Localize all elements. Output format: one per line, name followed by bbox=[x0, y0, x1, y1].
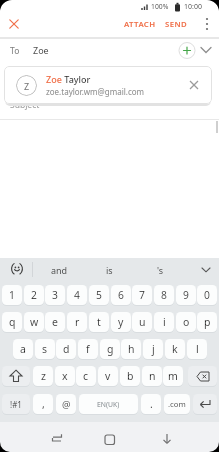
staticText: To bbox=[10, 45, 20, 57]
button[interactable]: 5 bbox=[89, 285, 109, 305]
button[interactable]: p bbox=[197, 312, 217, 332]
button[interactable]: m bbox=[163, 366, 183, 386]
staticText: 2 bbox=[31, 288, 37, 302]
button[interactable]: 's bbox=[137, 258, 183, 281]
button[interactable]: is bbox=[86, 258, 132, 281]
staticText: s bbox=[42, 342, 48, 356]
button[interactable] bbox=[4, 17, 22, 31]
button[interactable]: h bbox=[121, 339, 141, 359]
button[interactable]: k bbox=[165, 339, 185, 359]
button[interactable]: . bbox=[141, 394, 161, 414]
button[interactable]: 1 bbox=[2, 285, 22, 305]
staticText: , bbox=[42, 397, 45, 411]
button[interactable]: d bbox=[56, 339, 76, 359]
button[interactable]: .com bbox=[164, 394, 190, 414]
button[interactable]: 3 bbox=[45, 285, 65, 305]
staticText: !#1 bbox=[10, 399, 22, 410]
button[interactable]: x bbox=[55, 366, 75, 386]
button[interactable]: t bbox=[89, 312, 109, 332]
button[interactable]: 9 bbox=[176, 285, 196, 305]
button[interactable]: i bbox=[154, 312, 174, 332]
button[interactable] bbox=[152, 428, 182, 450]
staticText: t bbox=[97, 315, 101, 329]
staticText: is bbox=[106, 264, 113, 276]
staticText: 9 bbox=[183, 288, 189, 302]
staticText: a bbox=[20, 342, 26, 356]
button[interactable]: s bbox=[35, 339, 55, 359]
button[interactable]: ATTACH bbox=[120, 14, 160, 34]
staticText: @ bbox=[62, 398, 71, 411]
staticText: z bbox=[41, 369, 46, 383]
button[interactable]: b bbox=[120, 366, 140, 386]
staticText: w bbox=[30, 315, 39, 329]
staticText: 3 bbox=[52, 288, 58, 302]
staticText: ATTACH bbox=[124, 19, 156, 30]
staticText: 10:00 bbox=[184, 2, 202, 12]
staticText: p bbox=[204, 315, 211, 329]
staticText: Zoe bbox=[46, 73, 62, 85]
staticText: Subject bbox=[10, 99, 40, 111]
staticText: b bbox=[127, 369, 134, 383]
button[interactable] bbox=[4, 260, 30, 279]
button[interactable] bbox=[95, 428, 125, 450]
staticText: and bbox=[51, 264, 68, 276]
button[interactable]: y bbox=[111, 312, 131, 332]
staticText: 4 bbox=[74, 288, 80, 302]
button[interactable]: n bbox=[142, 366, 162, 386]
button[interactable]: u bbox=[132, 312, 152, 332]
staticText: 1 bbox=[9, 288, 15, 302]
button[interactable]: q bbox=[2, 312, 22, 332]
staticText: 7 bbox=[139, 288, 145, 302]
button[interactable]: 6 bbox=[111, 285, 131, 305]
button[interactable]: l bbox=[187, 339, 207, 359]
button[interactable]: 7 bbox=[132, 285, 152, 305]
button[interactable]: 2 bbox=[24, 285, 44, 305]
staticText: x bbox=[62, 369, 68, 383]
button[interactable]: , bbox=[33, 394, 53, 414]
button[interactable] bbox=[193, 394, 217, 414]
button[interactable]: v bbox=[98, 366, 118, 386]
button[interactable]: r bbox=[67, 312, 87, 332]
button[interactable]: SEND bbox=[160, 14, 193, 34]
button[interactable]: and bbox=[36, 258, 82, 281]
button[interactable] bbox=[2, 366, 30, 386]
staticText: 100% bbox=[151, 2, 169, 11]
button[interactable]: 8 bbox=[154, 285, 174, 305]
staticText: .com bbox=[168, 399, 186, 410]
button[interactable]: z bbox=[33, 366, 53, 386]
staticText: . bbox=[150, 397, 153, 411]
button[interactable] bbox=[42, 428, 72, 450]
staticText: Zoe bbox=[33, 44, 49, 56]
button[interactable]: w bbox=[24, 312, 44, 332]
button[interactable] bbox=[188, 366, 217, 386]
staticText: SEND bbox=[165, 19, 188, 30]
staticText: zoe.taylor.wm@gmail.com bbox=[46, 86, 145, 97]
staticText: v bbox=[105, 369, 111, 383]
button[interactable] bbox=[198, 14, 216, 34]
button[interactable]: a bbox=[13, 339, 33, 359]
button[interactable]: f bbox=[78, 339, 98, 359]
button[interactable]: o bbox=[176, 312, 196, 332]
button[interactable]: !#1 bbox=[2, 394, 30, 414]
button[interactable]: EN(UK) bbox=[79, 394, 138, 414]
staticText: n bbox=[149, 369, 156, 383]
button[interactable] bbox=[197, 41, 215, 59]
staticText: l bbox=[196, 342, 199, 356]
staticText: 8 bbox=[161, 288, 167, 302]
staticText: o bbox=[183, 315, 190, 329]
button[interactable] bbox=[195, 258, 217, 281]
staticText: f bbox=[86, 342, 90, 356]
staticText: r bbox=[75, 315, 80, 329]
button[interactable]: Z bbox=[4, 66, 212, 104]
button[interactable]: @ bbox=[56, 394, 76, 414]
button[interactable]: g bbox=[100, 339, 120, 359]
button[interactable] bbox=[177, 41, 197, 61]
button[interactable]: j bbox=[143, 339, 163, 359]
staticText: 0 bbox=[204, 288, 210, 302]
staticText: i bbox=[163, 315, 166, 329]
button[interactable]: 0 bbox=[197, 285, 217, 305]
staticText: 5 bbox=[96, 288, 102, 302]
button[interactable]: c bbox=[76, 366, 96, 386]
button[interactable]: 4 bbox=[67, 285, 87, 305]
button[interactable]: e bbox=[45, 312, 65, 332]
